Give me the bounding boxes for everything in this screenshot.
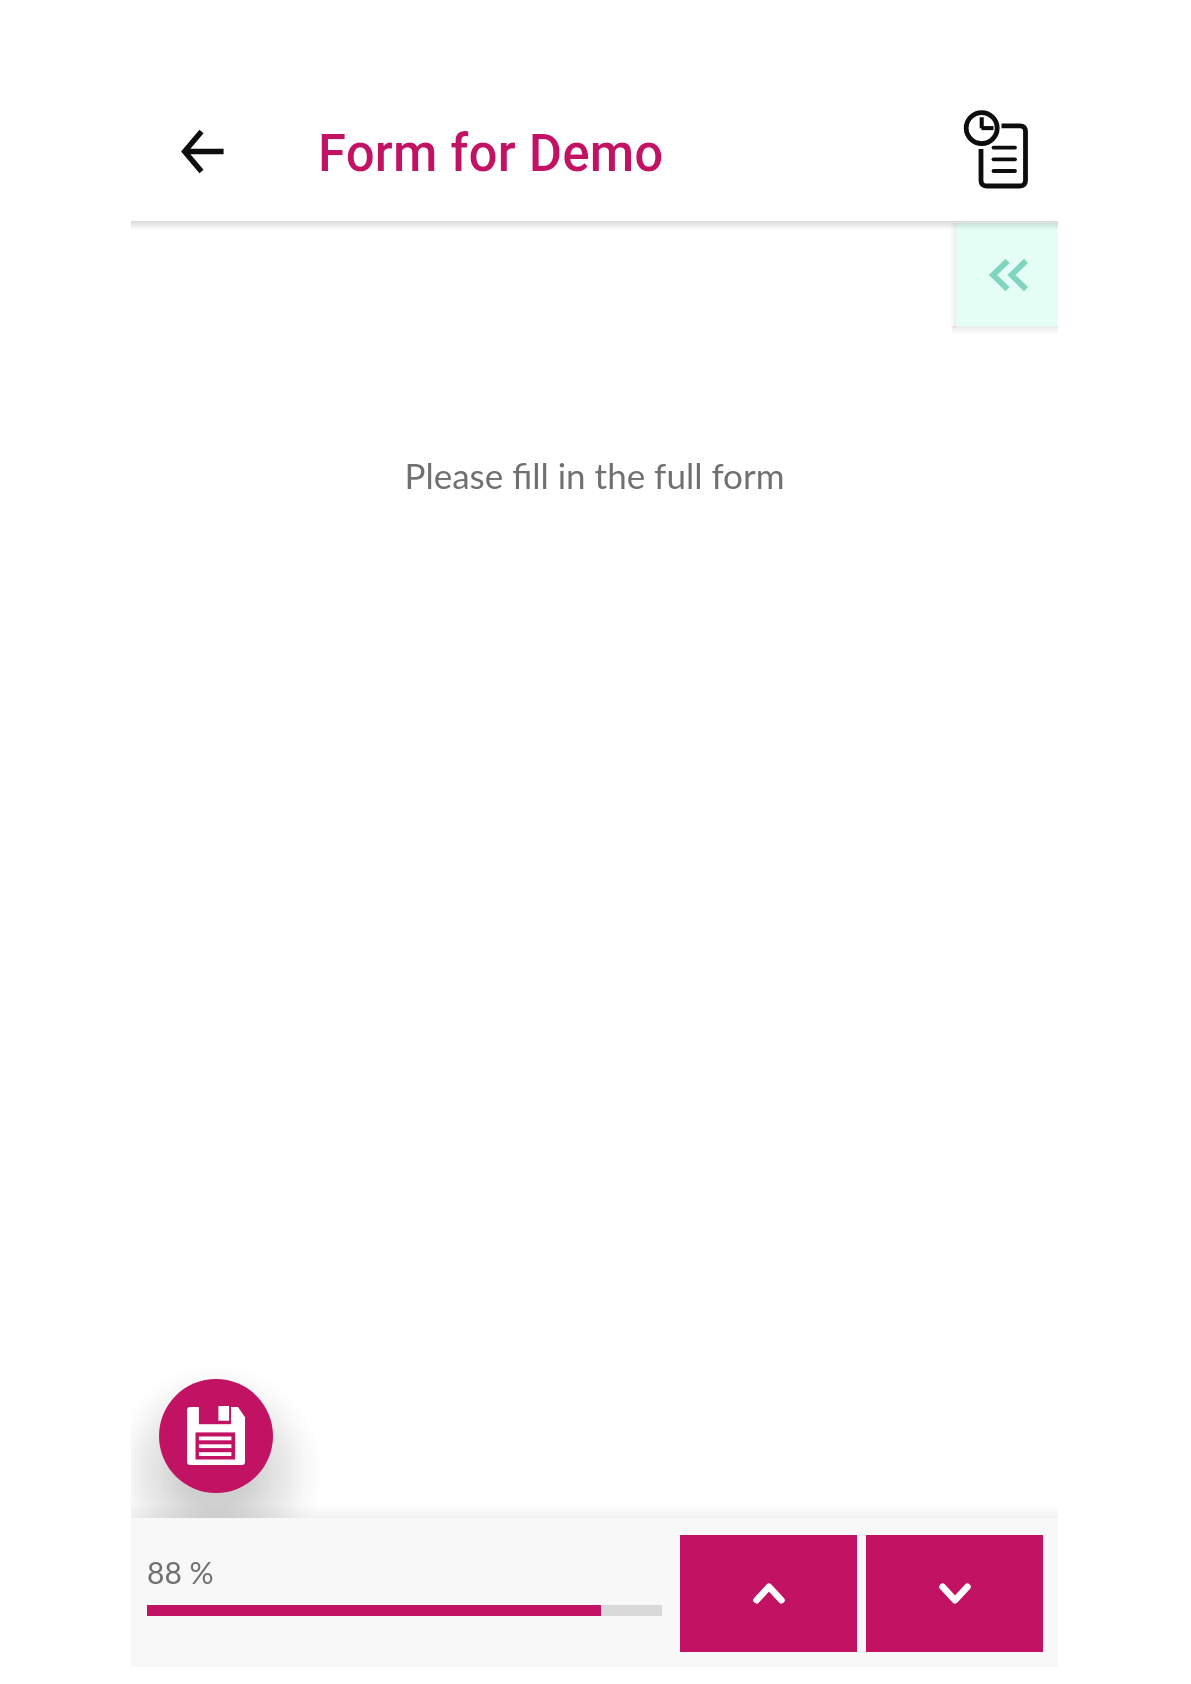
button[interactable]: History [954,100,1036,198]
button[interactable]: Next field [866,1535,1043,1652]
button[interactable]: Save [159,1379,273,1493]
staticText: Form for Demo [318,124,664,184]
button[interactable]: Back [161,109,245,193]
staticText: Please fill in the full form [131,454,1058,496]
button[interactable]: Collapse section [956,223,1058,326]
staticText: 88 % [147,1554,214,1590]
button[interactable]: Previous field [680,1535,857,1652]
